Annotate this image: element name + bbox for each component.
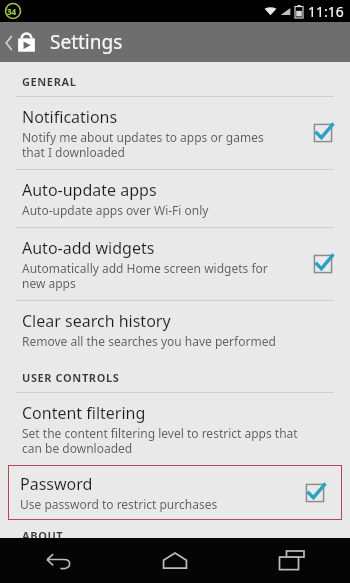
staticText: Password [20,473,93,495]
staticText: Content filtering [22,402,146,424]
button[interactable]: Clear search history [0,301,350,358]
staticText: Set the content filtering level to restr… [22,425,298,456]
staticText: Clear search history [22,310,171,332]
staticText: Notifications [22,106,118,128]
staticText: 34 [7,6,17,17]
button[interactable]: Auto-add widgets [0,228,350,300]
staticText: Auto-update apps [22,179,157,201]
button[interactable]: Content filtering [0,393,350,465]
staticText: USER CONTROLS [22,370,120,385]
staticText: Use password to restrict purchases [20,496,218,512]
button[interactable]: Back [0,538,116,583]
button[interactable]: Notifications [0,97,350,169]
button[interactable]: Back [0,22,42,62]
staticText: Automatically add Home screen widgets fo… [22,260,268,291]
button[interactable]: Recent apps [233,538,350,583]
button[interactable]: Password [8,465,342,520]
staticText: Remove all the searches you have perform… [22,333,276,349]
staticText: Auto-update apps over Wi-Fi only [22,202,209,218]
staticText: 11:16 [308,2,344,21]
staticText: Notify me about updates to apps or games… [22,129,264,160]
button[interactable]: Password [8,465,342,520]
staticText: ABOUT [22,528,64,538]
button[interactable]: Home [116,538,233,583]
button[interactable]: Auto-update apps [0,170,350,227]
staticText: GENERAL [22,74,77,89]
staticText: Auto-add widgets [22,237,155,259]
staticText: Settings [50,29,123,55]
